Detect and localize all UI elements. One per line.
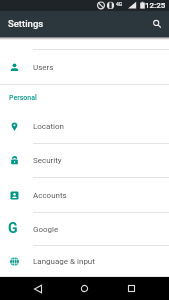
- button[interactable]: Accounts: [0, 178, 169, 212]
- button[interactable]: Recents: [120, 277, 143, 300]
- staticText: Settings: [8, 18, 44, 29]
- button[interactable]: Search: [147, 14, 167, 34]
- button[interactable]: Users: [0, 50, 169, 84]
- staticText: Location: [33, 122, 64, 131]
- button[interactable]: Security: [0, 144, 169, 177]
- button[interactable]: G: [0, 213, 169, 245]
- staticText: Users: [33, 63, 54, 72]
- button[interactable]: Language & input: [0, 246, 169, 277]
- staticText: G: [8, 220, 18, 236]
- staticText: Security: [33, 156, 62, 165]
- button[interactable]: Back: [26, 277, 49, 300]
- staticText: Language & input: [33, 257, 95, 266]
- staticText: Accounts: [33, 191, 67, 200]
- staticText: Personal: [9, 94, 37, 102]
- staticText: 12:25: [145, 1, 166, 10]
- button[interactable]: Home: [73, 277, 96, 300]
- staticText: Google: [33, 225, 59, 234]
- button[interactable]: Location: [0, 109, 169, 143]
- staticText: 4G: [116, 1, 123, 7]
